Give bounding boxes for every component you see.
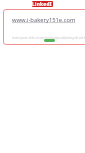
button[interactable]: LinkedIn [32,1,53,7]
staticText: Lorem ipsum dolor sit amet consectetur a… [12,36,85,40]
staticText: LinkedIn [32,1,53,7]
button[interactable]: www.i-bakery151e.com [12,16,76,24]
button[interactable]: Action button [44,39,55,42]
